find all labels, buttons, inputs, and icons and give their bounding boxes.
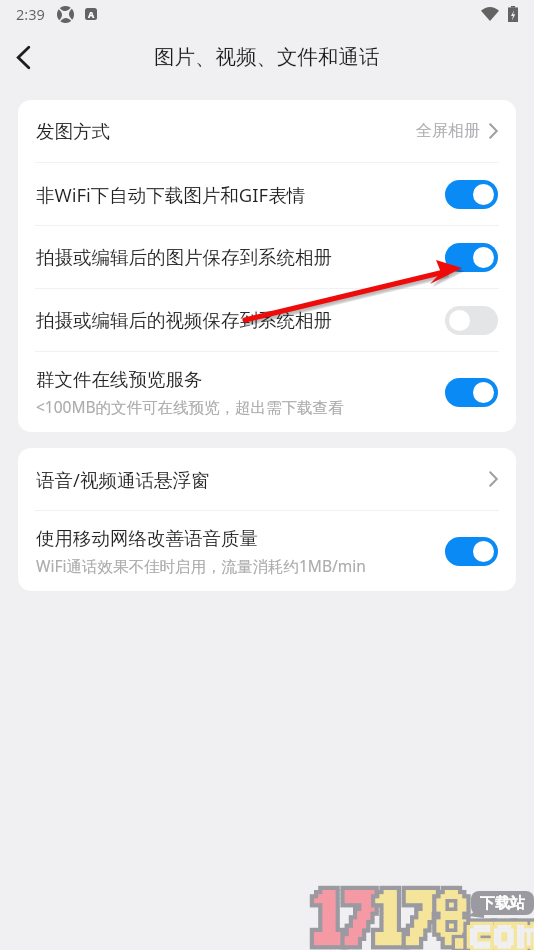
button[interactable]: Toggle on bbox=[445, 180, 498, 209]
staticText: 发图方式 bbox=[36, 120, 110, 143]
button[interactable]: 发图方式 bbox=[18, 100, 516, 162]
staticText: WiFi通话效果不佳时启用，流量消耗约1MB/min bbox=[36, 555, 366, 576]
staticText: A bbox=[88, 8, 95, 20]
staticText: 语音/视频通话悬浮窗 bbox=[36, 467, 210, 492]
button[interactable]: 拍摄或编辑后的图片保存到系统相册 bbox=[18, 226, 516, 288]
button[interactable]: 使用移动网络改善语音质量 bbox=[18, 511, 516, 591]
button[interactable]: Toggle on bbox=[445, 537, 498, 566]
staticText: 群文件在线预览服务 bbox=[36, 368, 203, 391]
button[interactable]: Toggle on bbox=[445, 378, 498, 407]
button[interactable]: 群文件在线预览服务 bbox=[18, 352, 516, 432]
button[interactable]: Toggle off bbox=[445, 306, 498, 335]
staticText: 2:39 bbox=[16, 4, 45, 24]
staticText: 拍摄或编辑后的视频保存到系统相册 bbox=[36, 309, 332, 332]
button[interactable]: 拍摄或编辑后的视频保存到系统相册 bbox=[18, 289, 516, 351]
button[interactable]: Toggle on bbox=[445, 243, 498, 272]
staticText: 非WiFi下自动下载图片和GIF表情 bbox=[36, 182, 306, 207]
staticText: 下载站 bbox=[480, 894, 525, 913]
staticText: <100MB的文件可在线预览，超出需下载查看 bbox=[36, 396, 344, 417]
button[interactable]: Back bbox=[1, 35, 45, 79]
button[interactable]: 非WiFi下自动下载图片和GIF表情 bbox=[18, 163, 516, 225]
button[interactable]: 语音/视频通话悬浮窗 bbox=[18, 448, 516, 510]
staticText: 拍摄或编辑后的图片保存到系统相册 bbox=[36, 246, 332, 269]
staticText: 使用移动网络改善语音质量 bbox=[36, 527, 258, 550]
staticText: 图片、视频、文件和通话 bbox=[154, 44, 380, 70]
staticText: 全屏相册 bbox=[416, 121, 480, 141]
